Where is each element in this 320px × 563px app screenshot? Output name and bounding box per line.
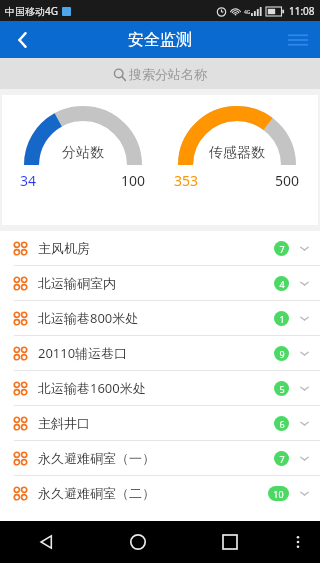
staticText: 分站数 (62, 144, 104, 162)
button[interactable]: 北运输巷1600米处 (0, 371, 320, 405)
staticText: 主斜井口 (38, 415, 90, 431)
staticText: 353 (174, 171, 199, 190)
staticText: 500 (275, 171, 300, 190)
button[interactable]: 20110辅运巷口 (0, 336, 320, 370)
staticText: 4 (279, 278, 285, 290)
staticText: 7 (279, 453, 285, 465)
button[interactable]: Back (0, 21, 44, 58)
button[interactable]: Menu (276, 21, 320, 58)
staticText: 永久避难硐室（一） (38, 450, 155, 466)
button[interactable]: Recent apps (184, 521, 276, 563)
staticText: 20110辅运巷口 (38, 344, 128, 362)
staticText: 4G (244, 9, 251, 16)
button[interactable]: 主风机房 (0, 231, 320, 265)
button[interactable]: 北运输巷800米处 (0, 301, 320, 335)
staticText: 1 (279, 313, 285, 325)
staticText: 5 (279, 383, 285, 395)
staticText: 34 (20, 171, 37, 190)
button[interactable]: Back (0, 521, 92, 563)
staticText: 搜索分站名称 (129, 66, 207, 82)
staticText: 9 (279, 348, 285, 360)
staticText: 10 (273, 488, 284, 500)
staticText: 6 (279, 418, 285, 430)
staticText: 传感器数 (209, 144, 265, 162)
button[interactable]: 主斜井口 (0, 406, 320, 440)
staticText: 北运输巷800米处 (38, 309, 139, 327)
button[interactable]: 北运输硐室内 (0, 266, 320, 300)
staticText: 主风机房 (38, 240, 90, 256)
staticText: 11:08 (289, 4, 315, 18)
button[interactable]: More options (276, 521, 320, 563)
staticText: 北运输硐室内 (38, 275, 116, 291)
button[interactable]: 永久避难硐室（一） (0, 441, 320, 475)
staticText: 中国移动4G (5, 4, 58, 18)
staticText: 北运输巷1600米处 (38, 379, 146, 397)
staticText: 100 (121, 171, 146, 190)
staticText: 安全监测 (128, 30, 192, 50)
button[interactable]: Home (92, 521, 184, 563)
staticText: 永久避难硐室（二） (38, 485, 155, 501)
staticText: 7 (279, 243, 285, 255)
button[interactable]: 搜索分站名称 (0, 58, 320, 89)
button[interactable]: 永久避难硐室（二） (0, 476, 320, 510)
